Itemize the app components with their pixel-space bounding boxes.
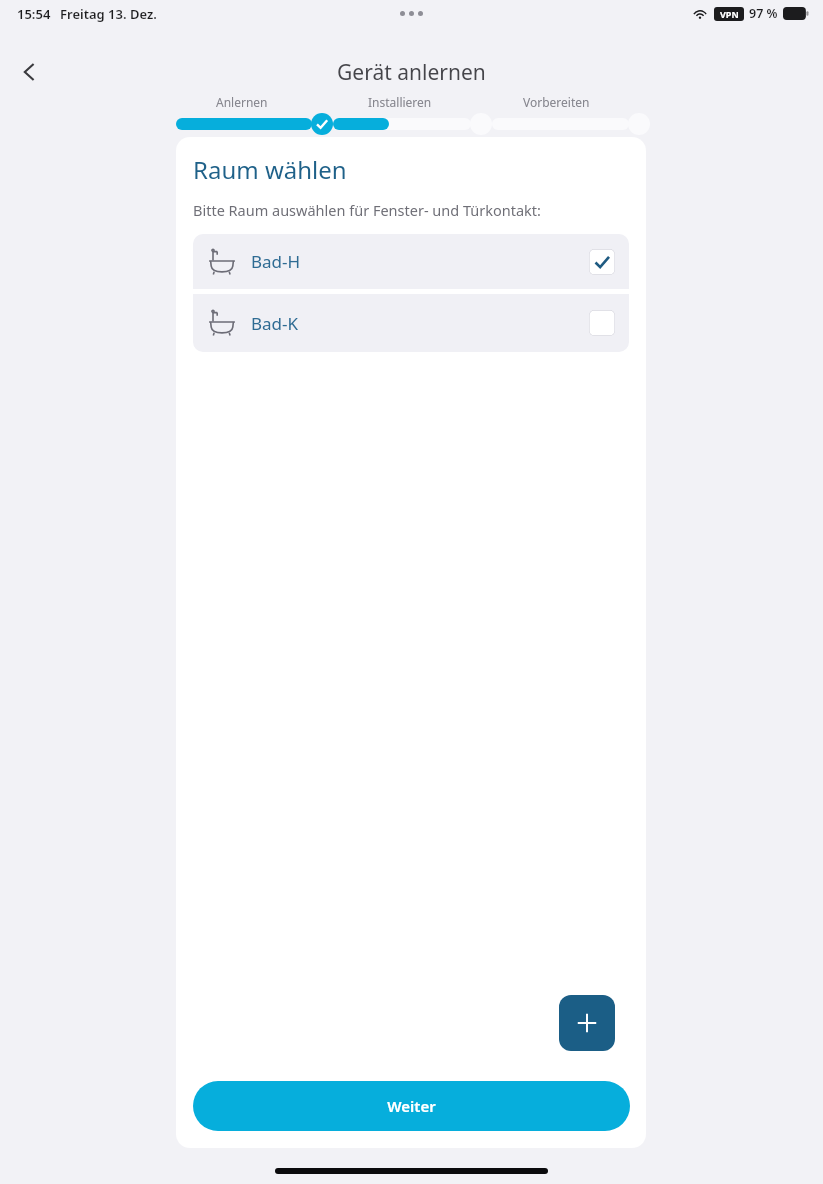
staticText: Bitte Raum auswählen für Fenster- und Tü… [193, 200, 541, 220]
staticText: Bad-H [251, 250, 301, 273]
staticText: Anlernen [216, 94, 268, 110]
staticText: Freitag 13. Dez. [60, 5, 157, 23]
staticText: Weiter [387, 1096, 436, 1116]
staticText: 97 % [749, 5, 778, 22]
button[interactable]: Back [6, 48, 54, 96]
staticText: Vorbereiten [523, 94, 590, 110]
staticText: Installieren [368, 94, 432, 110]
staticText: Bad-K [251, 312, 299, 335]
button[interactable]: Bad-H [193, 234, 629, 289]
button[interactable]: Nicht ausgewählt [589, 310, 615, 336]
button[interactable]: Bad-K [193, 294, 629, 352]
staticText: Raum wählen [193, 153, 347, 186]
button[interactable]: Raum hinzufügen [559, 995, 615, 1051]
staticText: 15:54 [17, 5, 51, 23]
button[interactable]: Weiter [193, 1081, 630, 1131]
staticText: Gerät anlernen [337, 58, 486, 87]
button[interactable]: Ausgewählt [589, 249, 615, 275]
staticText: VPN [720, 8, 739, 20]
